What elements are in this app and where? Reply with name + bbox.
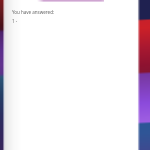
staticText: You have answered:: [12, 9, 55, 15]
staticText: 1 -: [12, 18, 18, 24]
